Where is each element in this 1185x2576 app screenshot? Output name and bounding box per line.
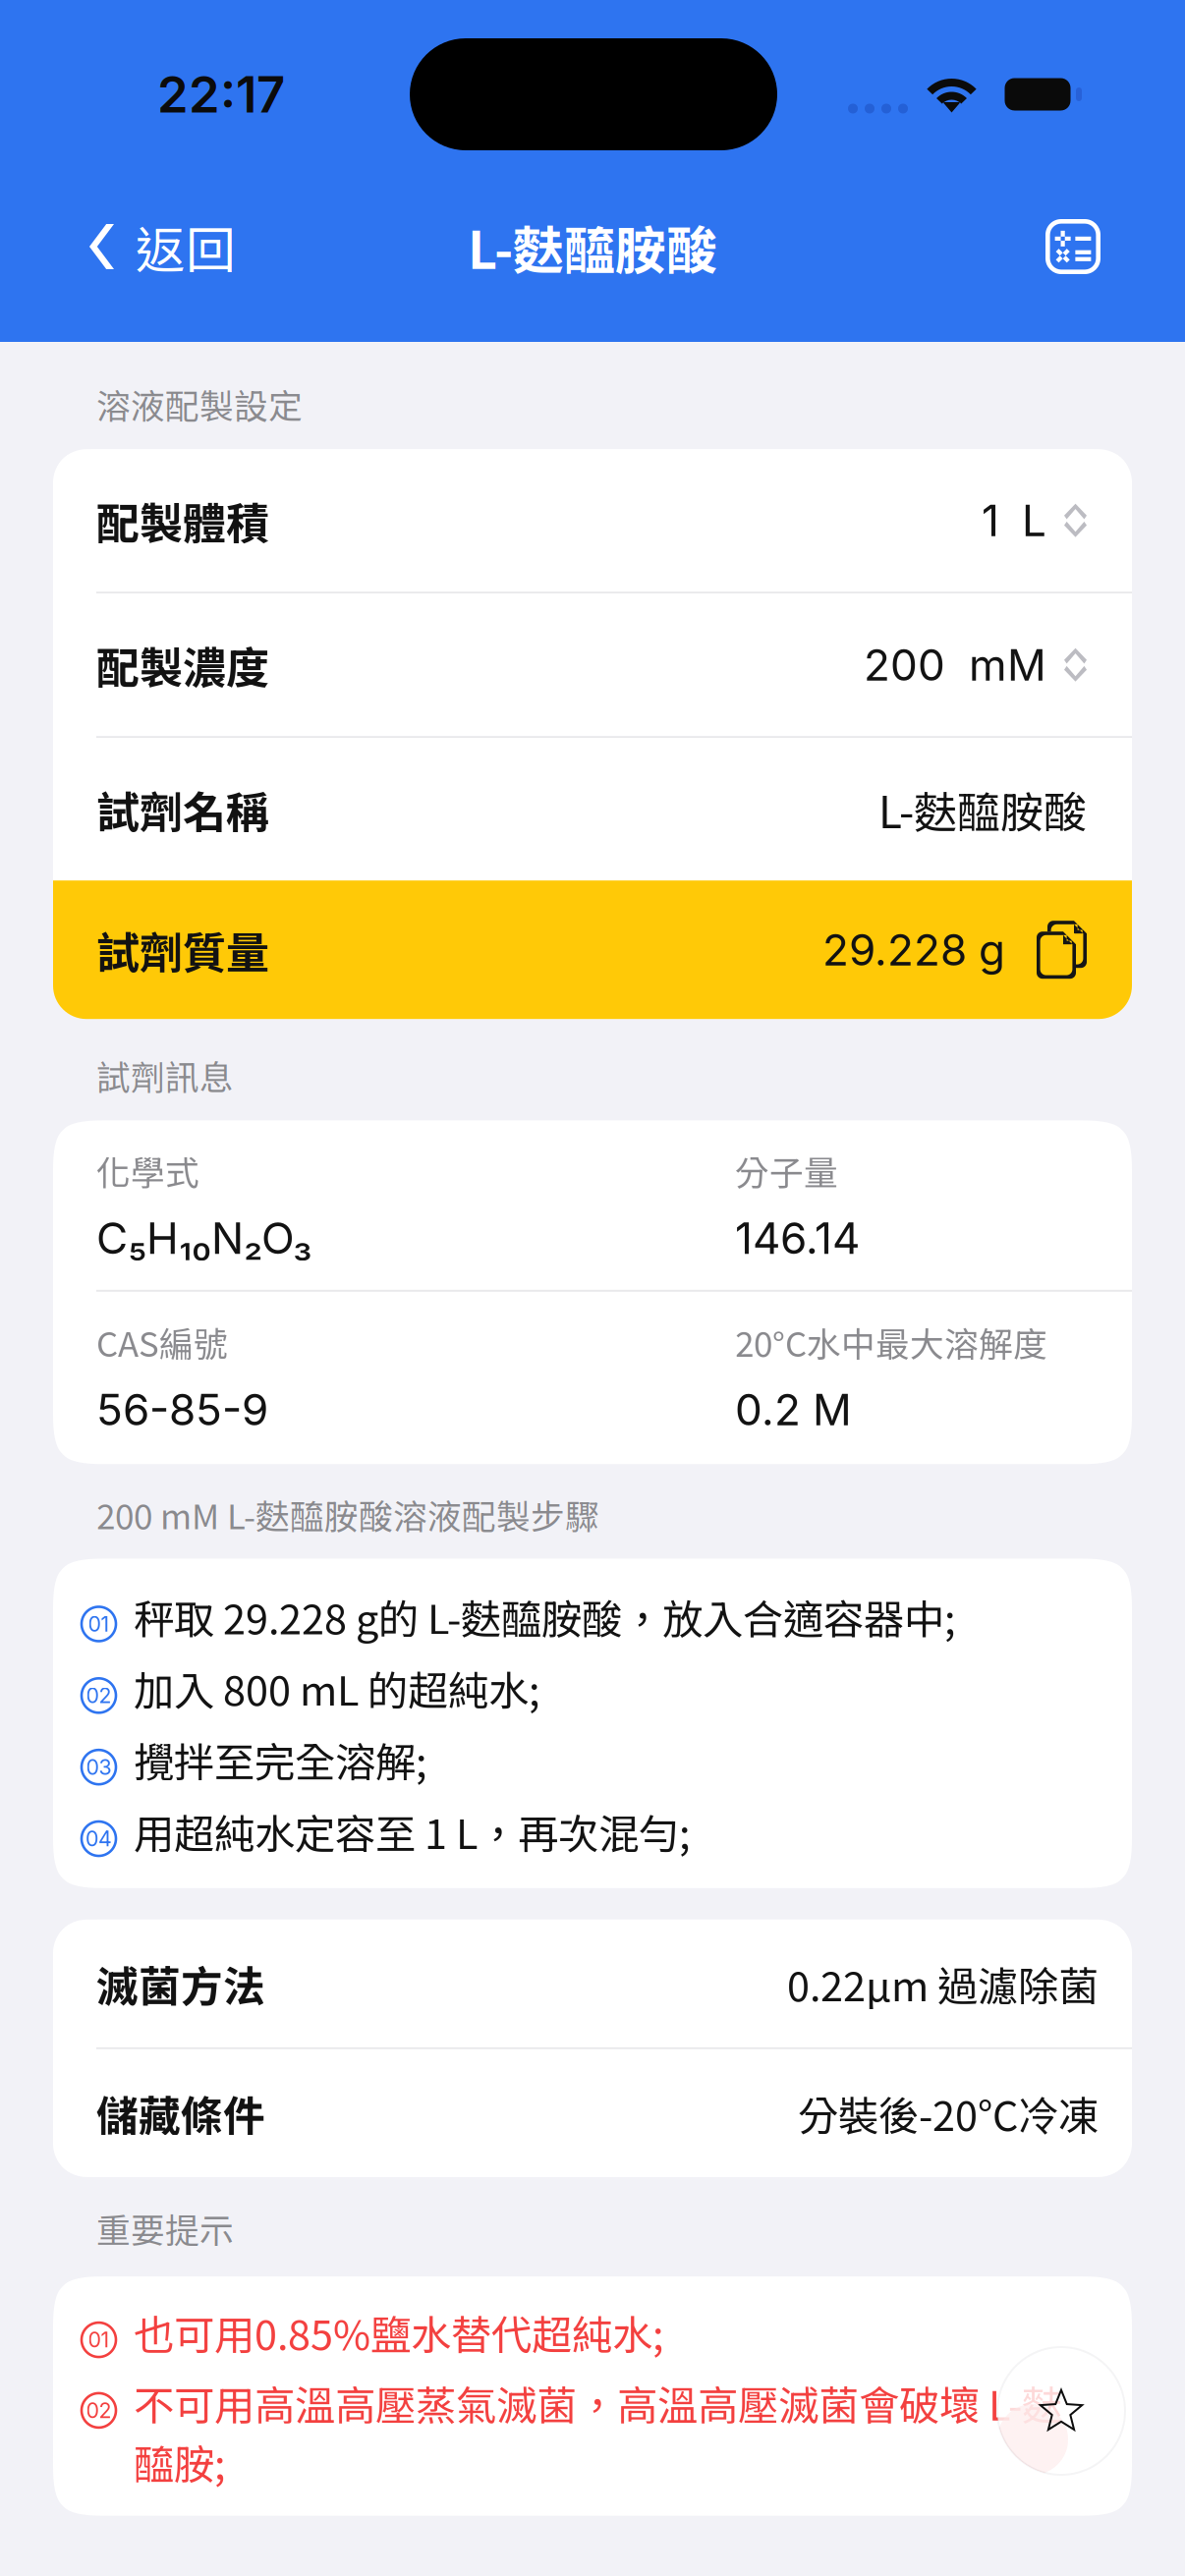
staticText: 攪拌至完全溶解; — [134, 1730, 426, 1789]
staticText: 20°C水中最大溶解度 — [735, 1317, 1047, 1367]
button[interactable]: 試劑質量 — [53, 880, 1132, 1019]
button[interactable]: 配製濃度 — [53, 594, 1132, 736]
staticText: 用超純水定容至 1 L，再次混勻; — [134, 1802, 690, 1861]
staticText: 試劑質量 — [96, 918, 269, 981]
staticText: 0.22μm 過濾除菌 — [787, 1954, 1099, 2013]
staticText: 1 L — [982, 494, 1046, 547]
staticText: CAS編號 — [96, 1317, 228, 1367]
staticText: 返回 — [136, 211, 236, 283]
button[interactable]: 配製體積 — [53, 449, 1132, 592]
staticText: 分子量 — [735, 1146, 838, 1195]
staticText: 03 — [86, 1754, 112, 1780]
staticText: L-麩醯胺酸 — [878, 778, 1087, 840]
staticText: 56-85-9 — [96, 1383, 268, 1436]
button[interactable]: Favorite — [997, 2347, 1125, 2475]
staticText: 04 — [85, 1826, 112, 1851]
staticText: 01 — [88, 1611, 110, 1637]
staticText: 配製濃度 — [96, 633, 269, 696]
staticText: 146.14 — [735, 1212, 860, 1264]
staticText: 加入 800 mL 的超純水; — [134, 1659, 539, 1718]
staticText: 也可用0.85%鹽水替代超純水; — [134, 2303, 663, 2362]
staticText: L-麩醯胺酸 — [468, 210, 717, 284]
staticText: 配製體積 — [96, 489, 269, 552]
staticText: 22:17 — [157, 64, 285, 124]
staticText: 200 mM L-麩醯胺酸溶液配製步驟 — [96, 1490, 599, 1539]
button[interactable]: Calculator — [1020, 199, 1185, 294]
staticText: 200 mM — [864, 639, 1046, 691]
staticText: 不可用高溫高壓蒸氣滅菌，高溫高壓滅菌會破壞 L-麩醯胺; — [134, 2374, 1062, 2491]
staticText: 02 — [86, 1683, 112, 1708]
staticText: 儲藏條件 — [96, 2083, 265, 2144]
button[interactable]: 返回 — [0, 199, 261, 294]
staticText: 29.228 g — [822, 924, 1005, 976]
staticText: 試劑訊息 — [96, 1050, 234, 1100]
button[interactable]: 試劑名稱 — [53, 738, 1132, 880]
staticText: 分裝後-20°C冷凍 — [798, 2084, 1099, 2143]
staticText: 秤取 29.228 g的 L-麩醯胺酸，放入合適容器中; — [134, 1587, 955, 1646]
staticText: 01 — [88, 2327, 110, 2352]
staticText: 重要提示 — [96, 2204, 234, 2253]
staticText: 溶液配製設定 — [96, 379, 303, 429]
staticText: 02 — [86, 2398, 112, 2423]
staticText: 滅菌方法 — [96, 1953, 265, 2014]
staticText: 試劑名稱 — [96, 778, 269, 840]
staticText: C₅H₁₀N₂O₃ — [96, 1212, 312, 1264]
staticText: 化學式 — [96, 1146, 199, 1195]
staticText: 0.2 M — [735, 1383, 852, 1436]
